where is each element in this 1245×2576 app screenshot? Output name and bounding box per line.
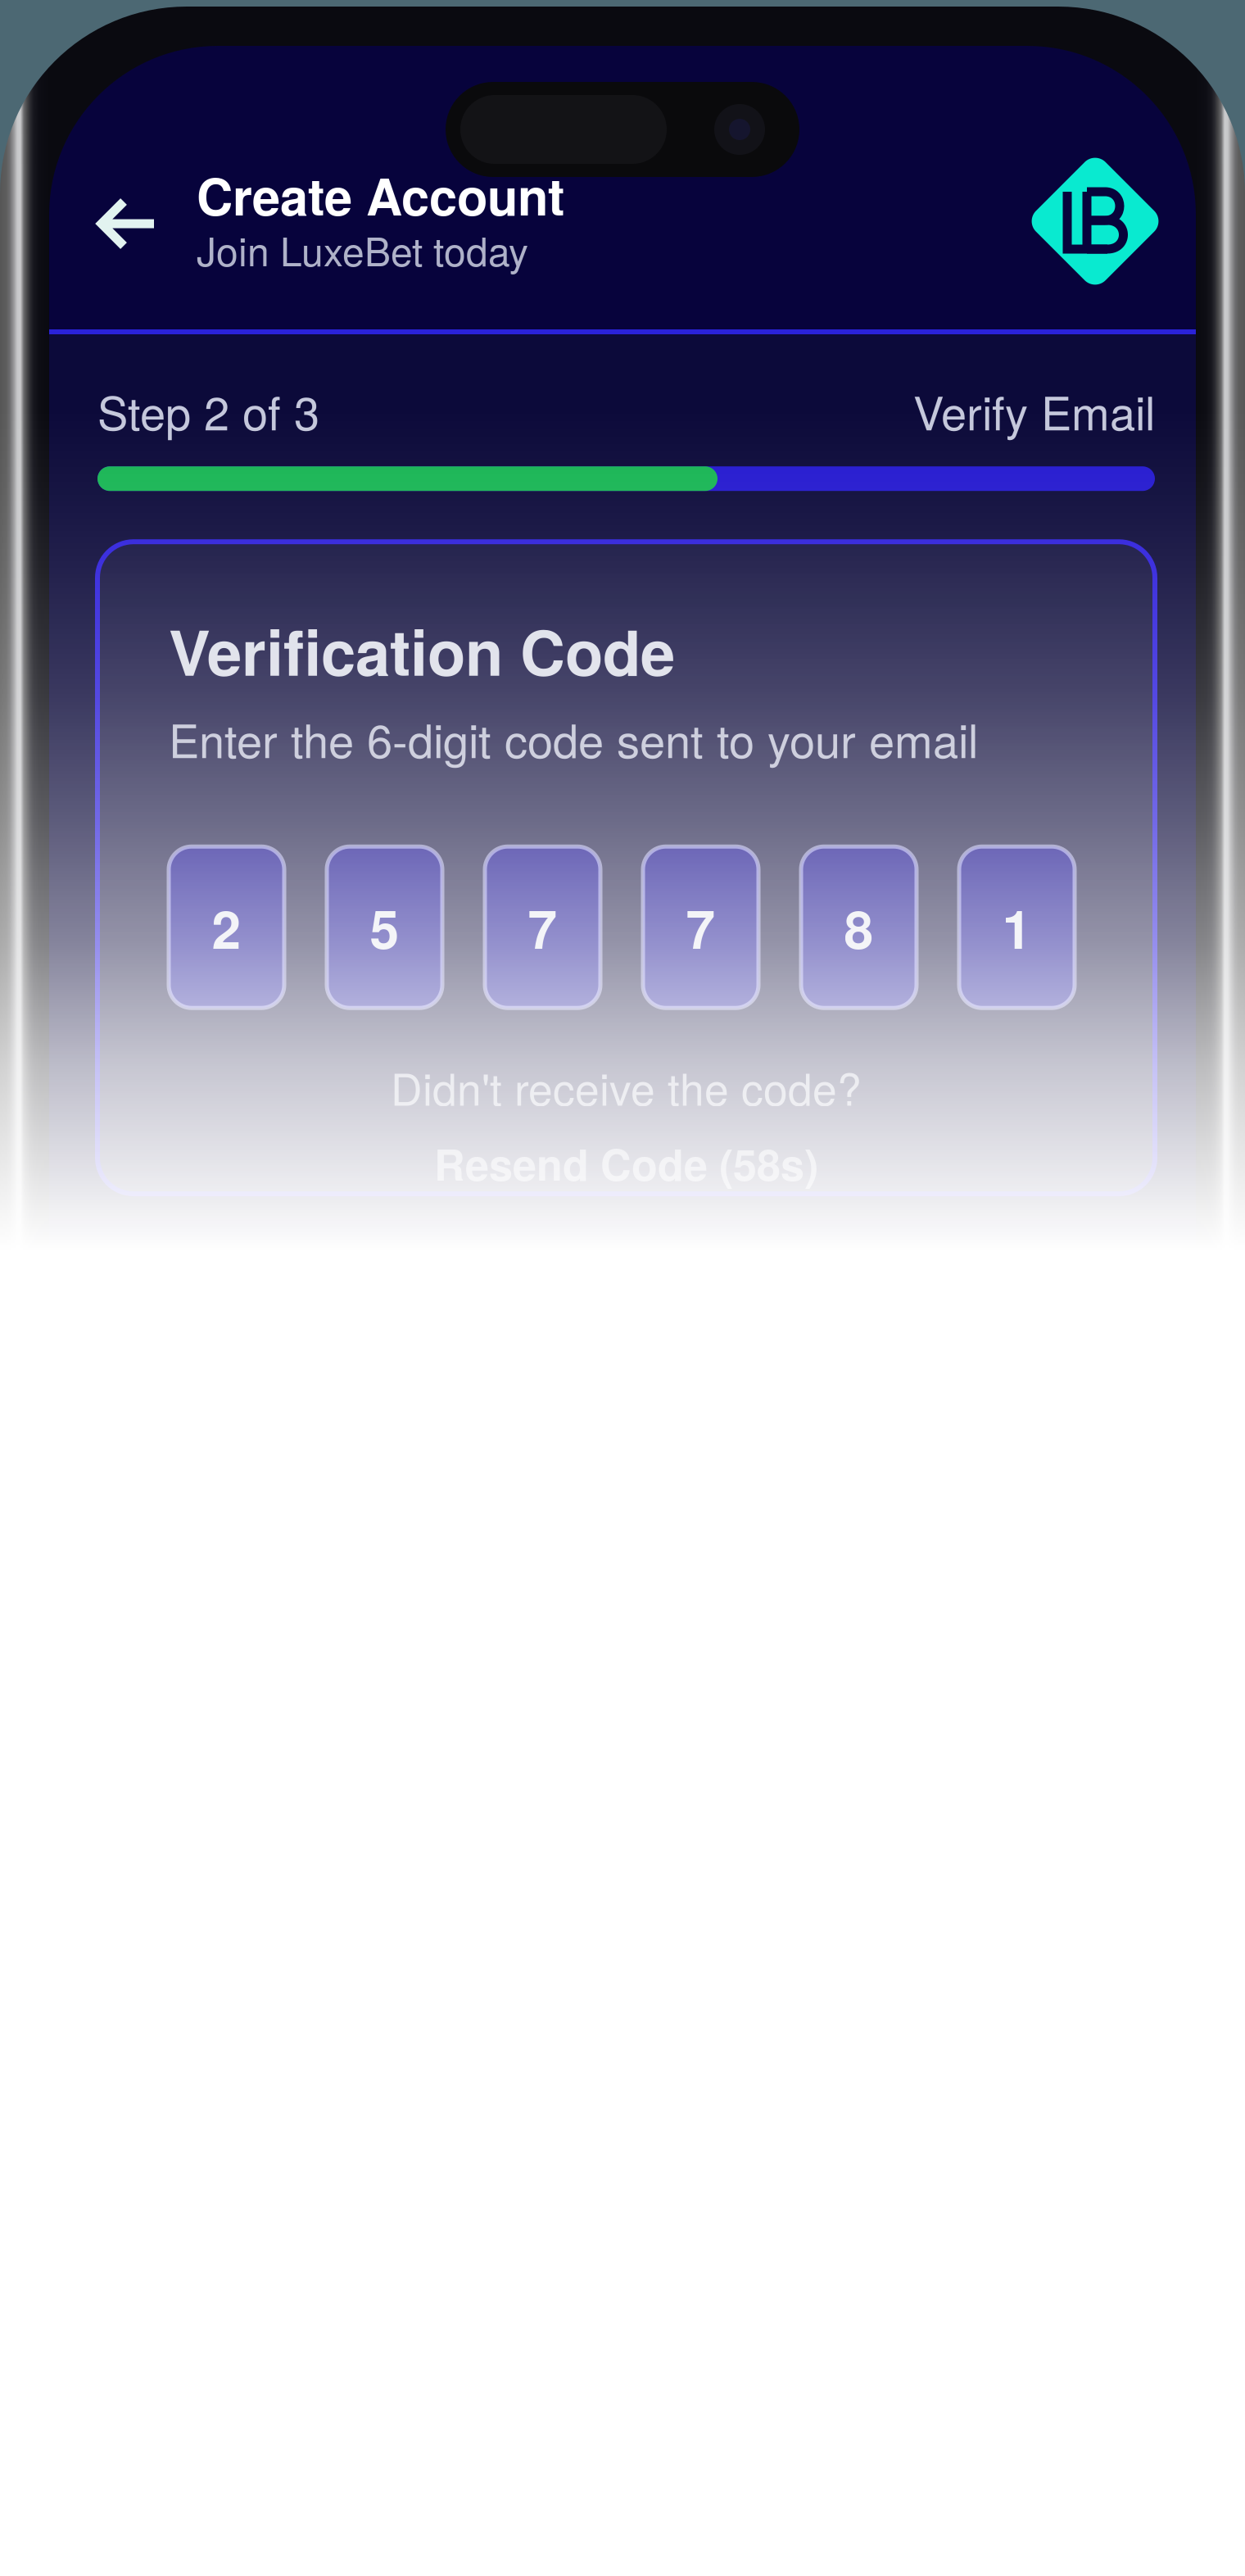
button[interactable]: LuxeBet	[1025, 152, 1165, 291]
staticText: Create Account	[197, 159, 564, 231]
staticText: Enter the 6-digit code sent to your emai…	[169, 705, 978, 771]
staticText: 1	[1002, 890, 1032, 965]
staticText: Resend Code (58s)	[434, 1133, 818, 1194]
staticText: Verify Email	[913, 378, 1155, 443]
button[interactable]: Back	[79, 179, 177, 269]
staticText: 7	[686, 890, 715, 965]
staticText: 2	[212, 890, 241, 965]
staticText: Step 2 of 3	[97, 378, 319, 443]
staticText: Join LuxeBet today	[197, 221, 528, 278]
staticText: 8	[844, 890, 874, 965]
button[interactable]: Resend Code (58s)	[434, 1133, 818, 1194]
staticText: Didn't receive the code?	[391, 1055, 862, 1118]
staticText: 5	[370, 890, 399, 965]
staticText: 7	[528, 890, 557, 965]
staticText: Verification Code	[169, 606, 675, 695]
